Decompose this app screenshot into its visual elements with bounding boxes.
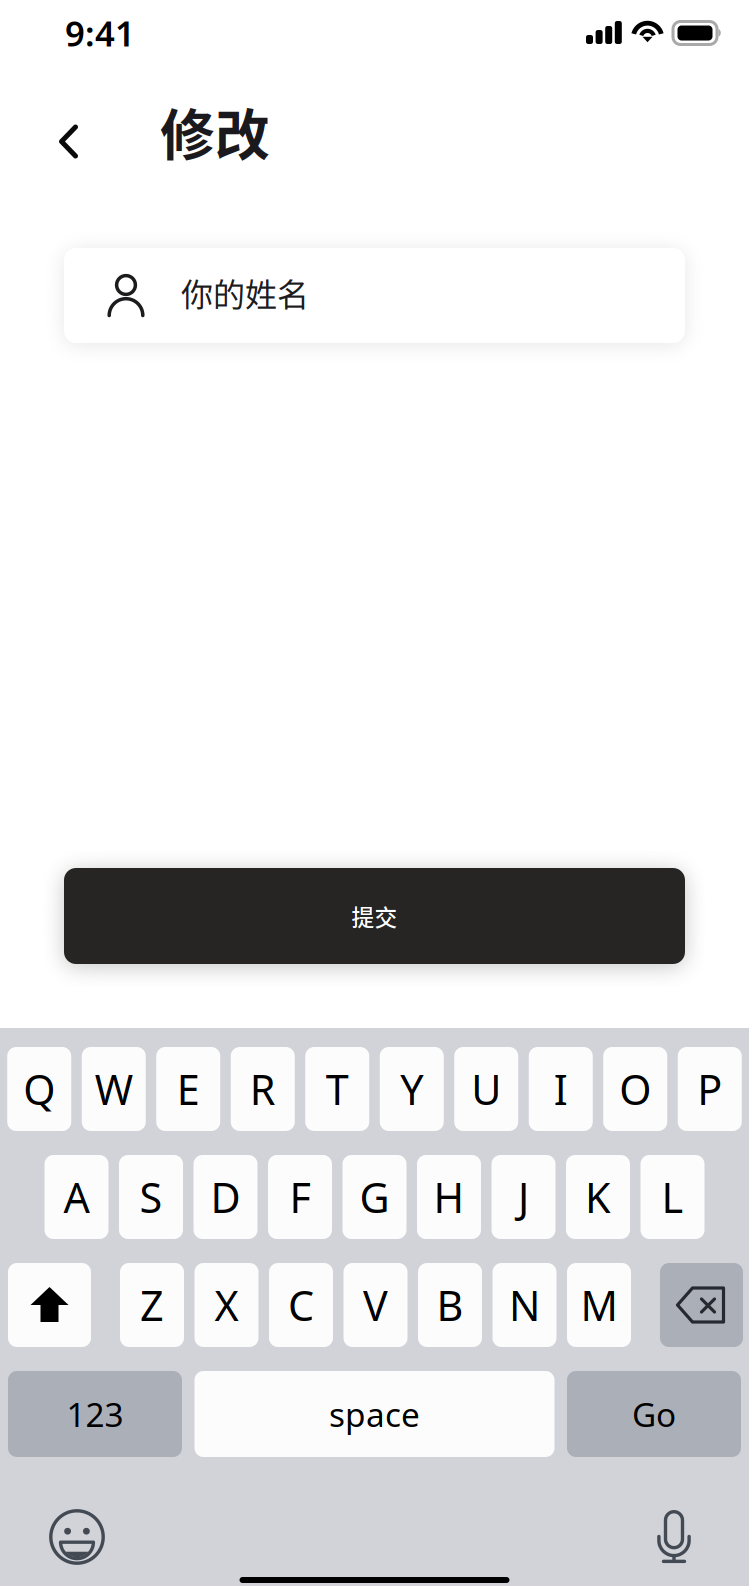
- button[interactable]: Z: [120, 1263, 184, 1347]
- staticText: K: [585, 1170, 611, 1224]
- staticText: E: [177, 1062, 200, 1116]
- button[interactable]: W: [82, 1047, 146, 1131]
- button[interactable]: X: [194, 1263, 258, 1347]
- staticText: H: [433, 1170, 464, 1224]
- button[interactable]: B: [418, 1263, 482, 1347]
- staticText: U: [471, 1062, 501, 1116]
- button[interactable]: A: [44, 1155, 108, 1239]
- staticText: Q: [23, 1062, 55, 1116]
- button[interactable]: Back: [42, 93, 112, 169]
- button[interactable]: V: [343, 1263, 407, 1347]
- button[interactable]: Delete: [660, 1263, 743, 1347]
- button[interactable]: Go: [567, 1371, 741, 1457]
- button[interactable]: Emoji: [41, 1501, 113, 1573]
- staticText: W: [95, 1062, 133, 1116]
- staticText: D: [210, 1170, 240, 1224]
- button[interactable]: space: [194, 1371, 554, 1457]
- staticText: Y: [400, 1062, 423, 1116]
- button[interactable]: C: [269, 1263, 333, 1347]
- staticText: N: [509, 1278, 540, 1332]
- staticText: M: [580, 1278, 617, 1332]
- button[interactable]: R: [231, 1047, 295, 1131]
- staticText: 提交: [351, 900, 397, 932]
- button[interactable]: Y: [380, 1047, 444, 1131]
- staticText: 你的姓名: [181, 269, 309, 316]
- staticText: Go: [632, 1392, 676, 1436]
- button[interactable]: T: [305, 1047, 369, 1131]
- button[interactable]: N: [492, 1263, 556, 1347]
- staticText: X: [214, 1278, 238, 1332]
- button[interactable]: L: [640, 1155, 704, 1239]
- staticText: B: [436, 1278, 463, 1332]
- button[interactable]: S: [119, 1155, 183, 1239]
- button[interactable]: E: [156, 1047, 220, 1131]
- button[interactable]: H: [417, 1155, 481, 1239]
- button[interactable]: 123: [8, 1371, 182, 1457]
- staticText: A: [63, 1170, 89, 1224]
- button[interactable]: I: [529, 1047, 593, 1131]
- button[interactable]: D: [193, 1155, 257, 1239]
- button[interactable]: 提交: [64, 868, 685, 964]
- button[interactable]: O: [603, 1047, 667, 1131]
- staticText: 123: [66, 1392, 123, 1436]
- button[interactable]: J: [491, 1155, 555, 1239]
- staticText: L: [661, 1170, 683, 1224]
- button[interactable]: Q: [7, 1047, 71, 1131]
- staticText: C: [288, 1278, 314, 1332]
- staticText: S: [139, 1170, 162, 1224]
- button[interactable]: G: [342, 1155, 406, 1239]
- button[interactable]: F: [268, 1155, 332, 1239]
- staticText: V: [363, 1278, 388, 1332]
- staticText: 9:41: [65, 10, 135, 56]
- staticText: 修改: [160, 91, 270, 171]
- staticText: Z: [140, 1278, 164, 1332]
- button[interactable]: K: [566, 1155, 630, 1239]
- button[interactable]: Shift: [8, 1263, 91, 1347]
- staticText: space: [329, 1392, 420, 1436]
- staticText: T: [326, 1062, 349, 1116]
- staticText: G: [359, 1170, 389, 1224]
- button[interactable]: M: [567, 1263, 631, 1347]
- staticText: I: [554, 1062, 568, 1116]
- staticText: F: [289, 1170, 310, 1224]
- staticText: R: [250, 1062, 276, 1116]
- button[interactable]: P: [678, 1047, 742, 1131]
- staticText: P: [697, 1062, 722, 1116]
- staticText: J: [518, 1170, 529, 1224]
- staticText: O: [619, 1062, 651, 1116]
- button[interactable]: Dictate: [638, 1501, 710, 1573]
- button[interactable]: U: [454, 1047, 518, 1131]
